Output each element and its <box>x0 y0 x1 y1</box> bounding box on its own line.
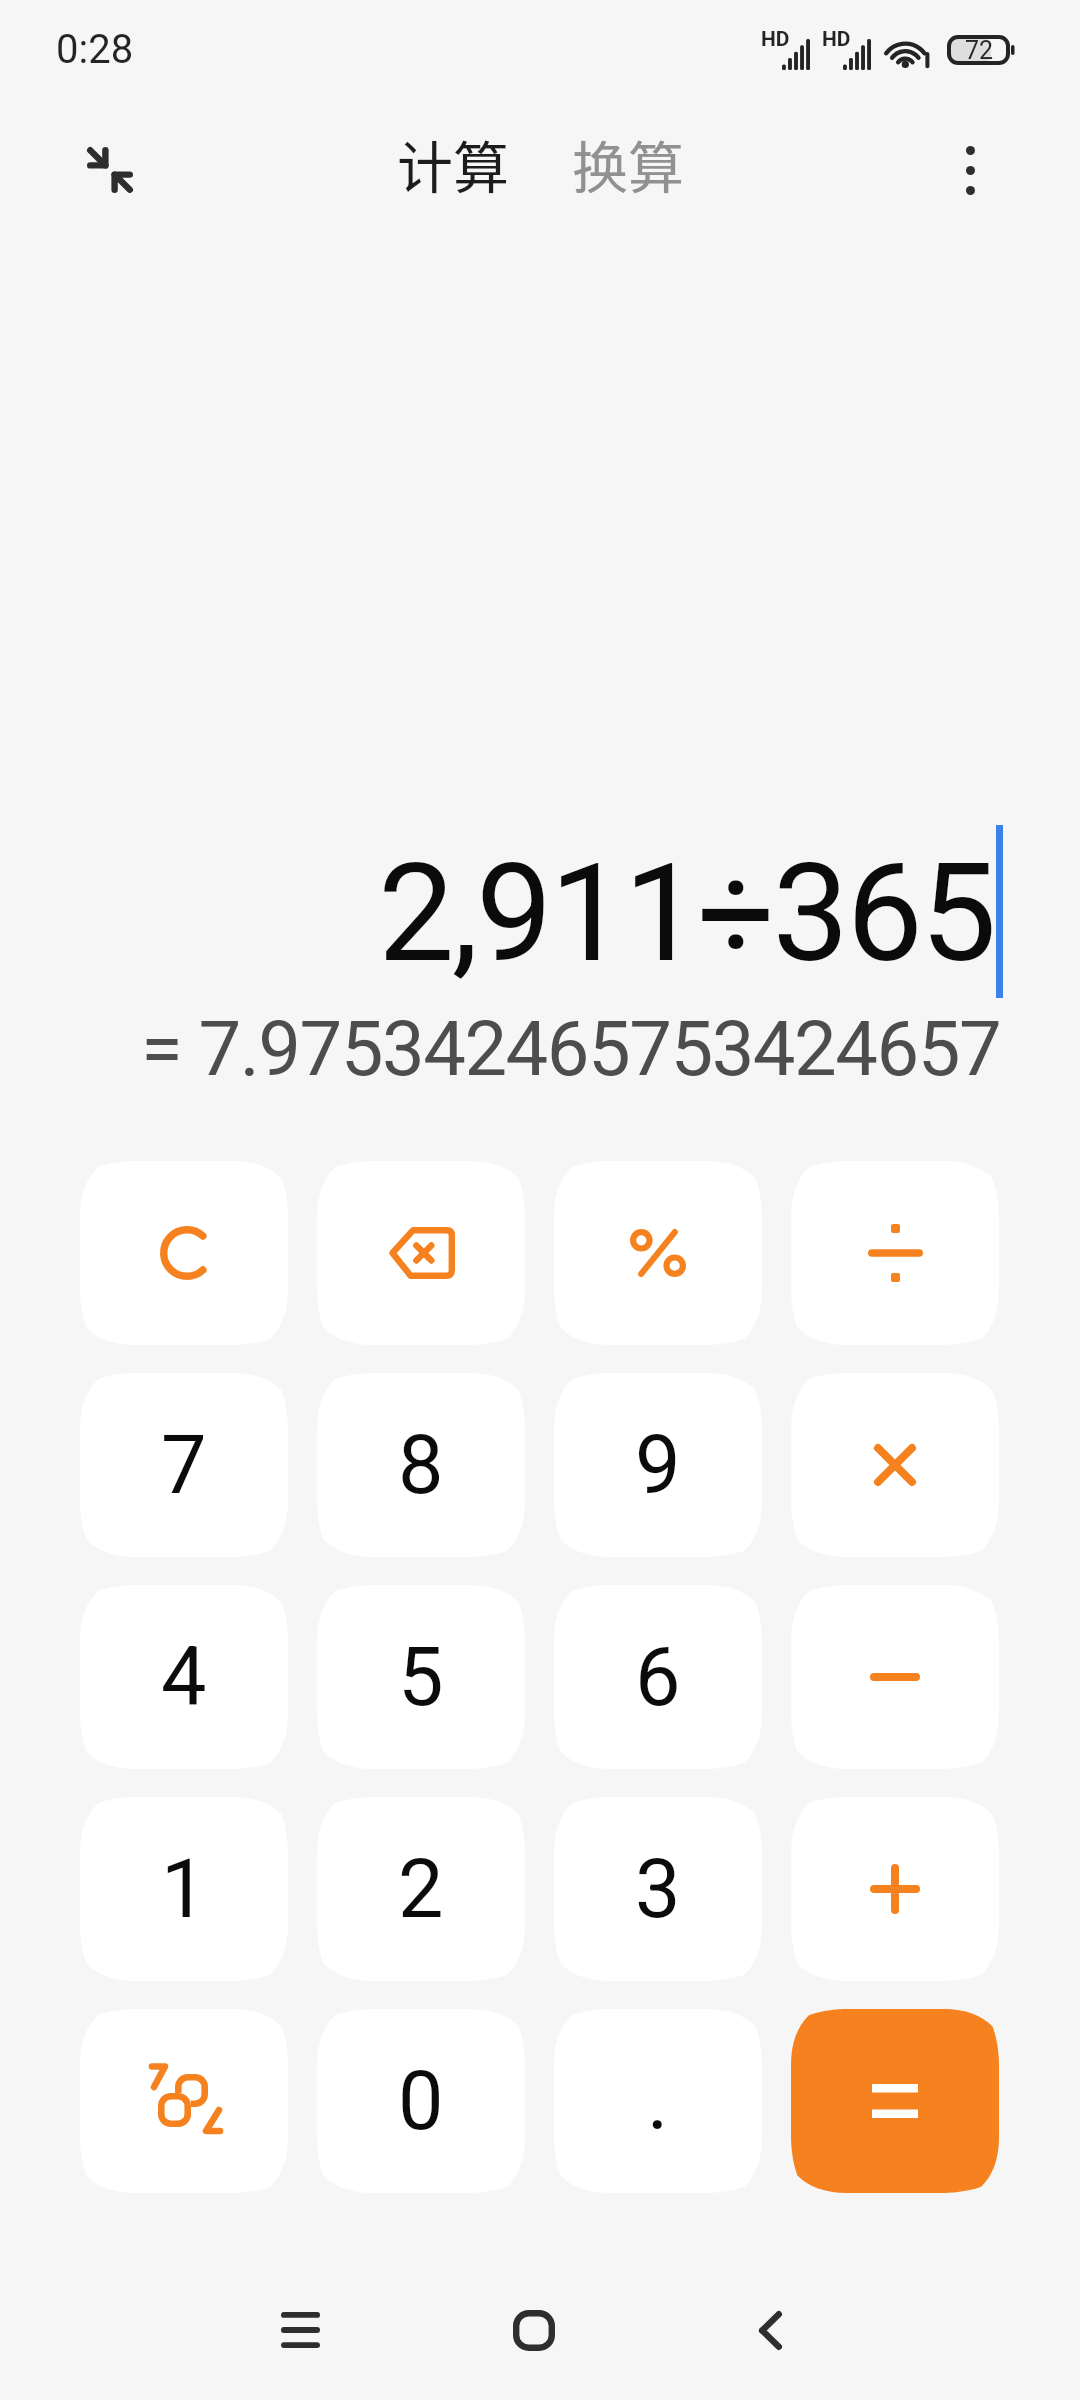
staticText: 72 <box>965 36 994 65</box>
button[interactable]: Home <box>474 2270 594 2390</box>
staticText: 计算 <box>397 123 509 204</box>
button[interactable]: Scientific mode <box>80 2009 288 2193</box>
staticText: HD <box>822 27 851 52</box>
staticText: 8 <box>398 1418 444 1513</box>
staticText: 1 <box>161 1842 207 1937</box>
button[interactable]: Clear <box>80 1161 288 1345</box>
button[interactable]: Divide <box>791 1161 999 1345</box>
button[interactable]: 9 <box>554 1373 762 1557</box>
staticText: = 7.975342465753424657 <box>141 1004 1001 1093</box>
button[interactable]: Equals <box>791 2009 999 2193</box>
button[interactable]: 0 <box>317 2009 525 2193</box>
staticText: 4 <box>161 1630 207 1725</box>
button[interactable]: 3 <box>554 1797 762 1981</box>
button[interactable]: 1 <box>80 1797 288 1981</box>
staticText: 3 <box>635 1842 681 1937</box>
staticText: 0:28 <box>56 26 134 73</box>
button[interactable]: 5 <box>317 1585 525 1769</box>
button[interactable]: Collapse <box>70 130 150 210</box>
staticText: 2,911÷365 <box>378 834 995 993</box>
button[interactable]: 7 <box>80 1373 288 1557</box>
staticText: 9 <box>635 1418 681 1513</box>
staticText: 6 <box>635 1630 681 1725</box>
staticText: 7 <box>161 1418 207 1513</box>
button[interactable]: 8 <box>317 1373 525 1557</box>
button[interactable]: Percent <box>554 1161 762 1345</box>
button[interactable]: 2 <box>317 1797 525 1981</box>
button[interactable]: Multiply <box>791 1373 999 1557</box>
button[interactable]: Back <box>710 2270 830 2390</box>
staticText: 2 <box>398 1842 444 1937</box>
button[interactable]: Plus <box>791 1797 999 1981</box>
button[interactable]: Minus <box>791 1585 999 1769</box>
staticText: 5 <box>398 1630 444 1725</box>
button[interactable]: Recent apps <box>240 2270 360 2390</box>
staticText: . <box>647 2054 669 2149</box>
button[interactable]: 计算 <box>367 107 539 220</box>
button[interactable]: More options <box>930 130 1010 210</box>
staticText: 0 <box>398 2054 444 2149</box>
button[interactable]: 4 <box>80 1585 288 1769</box>
button[interactable]: . <box>554 2009 762 2193</box>
button[interactable]: 换算 <box>542 107 714 220</box>
staticText: 换算 <box>572 123 684 204</box>
button[interactable]: Backspace <box>317 1161 525 1345</box>
staticText: HD <box>761 27 790 52</box>
button[interactable]: 6 <box>554 1585 762 1769</box>
